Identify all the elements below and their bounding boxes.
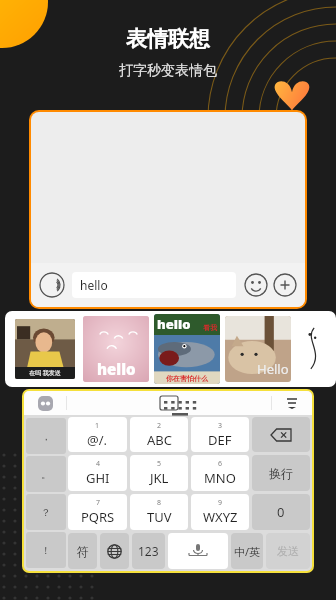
staticText: 123: [138, 543, 159, 559]
button[interactable]: Sticker man: [15, 319, 75, 379]
staticText: 中/英: [234, 544, 261, 559]
button[interactable]: Panda: [38, 396, 53, 411]
button[interactable]: Keyboard: [160, 396, 178, 410]
staticText: hello: [80, 277, 108, 293]
staticText: 2: [157, 421, 162, 431]
button[interactable]: 4: [68, 455, 127, 491]
button[interactable]: ，: [26, 418, 66, 454]
button[interactable]: 123: [132, 533, 165, 569]
button[interactable]: 9: [191, 494, 249, 530]
staticText: 发送: [277, 544, 299, 558]
staticText: MNO: [204, 469, 236, 487]
staticText: ABC: [147, 431, 172, 449]
staticText: 换行: [269, 466, 293, 481]
staticText: 你在害怕什么: [166, 374, 208, 383]
button[interactable]: ？: [26, 494, 66, 530]
staticText: GHI: [86, 469, 110, 487]
button[interactable]: 换行: [252, 455, 310, 491]
button[interactable]: 3: [191, 417, 249, 452]
button[interactable]: 发送: [266, 533, 310, 569]
button[interactable]: Language: [100, 533, 129, 569]
staticText: 0: [277, 503, 285, 521]
staticText: TUV: [147, 508, 172, 526]
staticText: PQRS: [81, 508, 115, 526]
staticText: 在吗 我发送: [29, 369, 61, 377]
staticText: 8: [157, 498, 162, 508]
button[interactable]: 6: [191, 455, 249, 491]
staticText: 表情联想: [126, 26, 210, 52]
button[interactable]: hello: [72, 272, 236, 298]
staticText: ，: [41, 430, 51, 443]
staticText: 5: [157, 459, 162, 469]
button[interactable]: Delete: [252, 417, 310, 452]
staticText: 9: [218, 498, 223, 508]
staticText: hello: [157, 315, 191, 333]
button[interactable]: 2: [130, 417, 188, 452]
button[interactable]: 5: [130, 455, 188, 491]
button[interactable]: Hide keyboard: [284, 395, 300, 411]
staticText: 3: [218, 421, 223, 431]
staticText: 7: [96, 498, 101, 508]
button[interactable]: Sticker cat: [225, 316, 291, 382]
button[interactable]: 中/英: [231, 533, 263, 569]
button[interactable]: 符: [68, 533, 97, 569]
button[interactable]: Emoji: [244, 273, 268, 297]
staticText: 看我: [203, 323, 217, 332]
staticText: 符: [77, 544, 89, 559]
button[interactable]: More stickers: [296, 316, 329, 382]
staticText: DEF: [208, 431, 232, 449]
staticText: 1: [95, 421, 100, 431]
staticText: ！: [41, 544, 51, 557]
button[interactable]: Voice input: [39, 272, 65, 298]
button[interactable]: 7: [68, 494, 127, 530]
staticText: hello: [97, 359, 136, 379]
button[interactable]: Sticker pink: [83, 316, 149, 382]
staticText: @/.: [87, 431, 108, 449]
button[interactable]: 8: [130, 494, 188, 530]
staticText: 。: [41, 468, 51, 481]
button[interactable]: Space: [168, 533, 228, 569]
staticText: JKL: [150, 469, 169, 487]
staticText: ？: [41, 506, 51, 519]
button[interactable]: 0: [252, 494, 310, 530]
staticText: 4: [96, 459, 101, 469]
button[interactable]: 1: [68, 417, 127, 452]
button[interactable]: ！: [26, 532, 66, 568]
staticText: WXYZ: [203, 508, 238, 526]
button[interactable]: Add: [273, 273, 297, 297]
button[interactable]: Sticker fish: [154, 314, 220, 384]
staticText: Hello: [257, 360, 289, 378]
staticText: 打字秒变表情包: [119, 62, 217, 80]
staticText: 6: [218, 459, 223, 469]
